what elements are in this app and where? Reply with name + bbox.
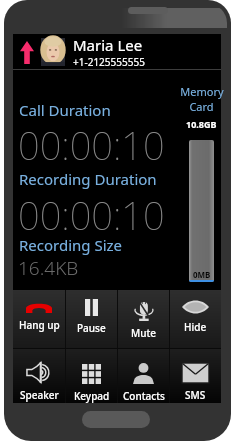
button[interactable]: Speaker: [13, 349, 65, 403]
staticText: Hide: [184, 320, 207, 334]
staticText: Pause: [77, 321, 106, 335]
other: Outgoing call: [20, 41, 34, 64]
staticText: 10.8GB: [186, 118, 217, 130]
staticText: +1-2125555555: [73, 55, 145, 69]
staticText: SMS: [185, 388, 206, 402]
staticText: Memory: [180, 84, 224, 99]
button[interactable]: Contacts: [118, 349, 169, 403]
staticText: Hang up: [19, 318, 60, 332]
staticText: 00:00:10: [18, 119, 165, 171]
staticText: Recording Size: [19, 235, 123, 255]
staticText: Mute: [131, 326, 157, 340]
button[interactable]: Hide: [170, 290, 221, 348]
staticText: Card: [189, 99, 214, 114]
button[interactable]: Mute: [118, 290, 169, 348]
staticText: Maria Lee: [73, 35, 143, 55]
staticText: Speaker: [20, 388, 59, 402]
staticText: 00:00:10: [18, 189, 165, 241]
staticText: Contacts: [123, 389, 165, 403]
button[interactable]: Hang up: [13, 290, 65, 348]
button[interactable]: Outgoing call: [13, 34, 221, 70]
button[interactable]: Pause: [66, 290, 117, 348]
button[interactable]: 0MB: [189, 140, 214, 282]
button[interactable]: SMS: [170, 349, 221, 403]
staticText: 16.4KB: [18, 255, 79, 281]
staticText: Keypad: [74, 389, 110, 403]
staticText: Recording Duration: [19, 169, 157, 189]
button[interactable]: Keypad: [66, 349, 117, 403]
staticText: 0MB: [193, 269, 211, 280]
staticText: Call Duration: [19, 100, 111, 120]
